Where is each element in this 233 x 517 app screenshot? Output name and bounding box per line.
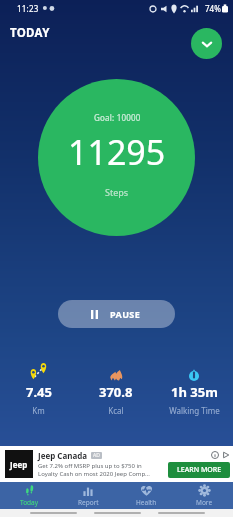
staticText: TODAY (10, 25, 50, 41)
staticText: Kcal (108, 405, 124, 416)
staticText: 1h 35m (171, 383, 218, 401)
staticText: Report (78, 498, 99, 507)
staticText: Jeep Canada (38, 450, 88, 461)
button[interactable]: 1h 35m (155, 361, 233, 416)
staticText: Goal: 10000 (94, 112, 141, 123)
button[interactable]: PAUSE (58, 300, 175, 328)
staticText: Steps (105, 186, 129, 198)
staticText: 7.45 (26, 383, 52, 401)
button[interactable]: Today (0, 482, 59, 509)
staticText: Today (20, 498, 39, 507)
button[interactable]: LEARN MORE (168, 462, 230, 478)
staticText: 11:23 (17, 3, 39, 14)
button[interactable]: 370.8 (77, 361, 155, 416)
staticText: 11295 (68, 129, 166, 175)
button[interactable]: Expand (191, 28, 222, 59)
staticText: Get 7.2% off MSRP plus up to $750 in (38, 462, 142, 470)
staticText: 74% (205, 3, 221, 14)
staticText: 370.8 (99, 383, 133, 401)
staticText: More (196, 498, 213, 507)
staticText: Loyalty Cash on most 2020 Jeep Comp... (38, 470, 150, 478)
button[interactable]: Report (59, 482, 117, 509)
staticText: AD (93, 452, 100, 459)
button[interactable]: Goal: 10000 (38, 79, 195, 236)
button[interactable]: Health (117, 482, 175, 509)
staticText: Km (32, 405, 45, 416)
staticText: Health (136, 498, 157, 507)
button[interactable]: More (175, 482, 233, 509)
staticText: LEARN MORE (177, 465, 222, 475)
staticText: Jeep (10, 459, 28, 470)
button[interactable]: 7.45 (0, 361, 77, 416)
staticText: PAUSE (110, 308, 141, 320)
staticText: Walking Time (169, 405, 220, 416)
